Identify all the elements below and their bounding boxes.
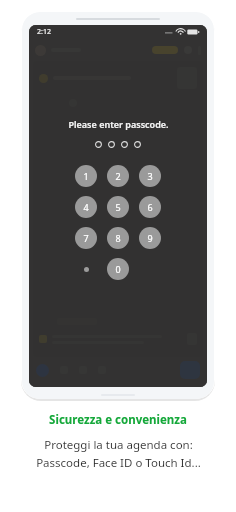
button[interactable]: 1 [75, 165, 97, 187]
staticText: 2:12 [37, 27, 51, 37]
staticText: 4 [83, 201, 89, 213]
button[interactable]: 5 [107, 196, 129, 218]
staticText: 1 [83, 170, 89, 182]
button[interactable]: 6 [139, 196, 161, 218]
staticText: 7 [83, 232, 89, 244]
button[interactable]: 0 [107, 258, 129, 280]
staticText: 9 [147, 232, 153, 244]
staticText: 6 [147, 201, 153, 213]
button[interactable]: 7 [75, 227, 97, 249]
staticText: Please enter passcode. [68, 118, 169, 130]
button[interactable]: Biometric unlock [75, 258, 97, 280]
button[interactable]: 8 [107, 227, 129, 249]
staticText: 5 [115, 201, 121, 213]
staticText: Proteggi la tua agenda con: [44, 437, 193, 453]
button[interactable]: 9 [139, 227, 161, 249]
button[interactable]: 3 [139, 165, 161, 187]
staticText: 3 [147, 170, 153, 182]
button[interactable]: 2 [107, 165, 129, 187]
staticText: Passcode, Face ID o Touch Id... [36, 455, 201, 471]
staticText: 2 [115, 170, 121, 182]
staticText: 8 [115, 232, 121, 244]
button[interactable]: 4 [75, 196, 97, 218]
staticText: 0 [115, 263, 121, 275]
staticText: Sicurezza e convenienza [49, 412, 187, 428]
